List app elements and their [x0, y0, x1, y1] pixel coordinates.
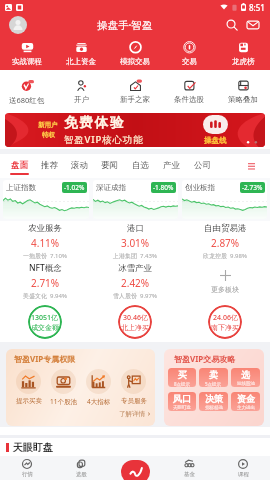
button[interactable]: 卖 [199, 368, 228, 387]
button[interactable]: 资金 [231, 392, 260, 411]
staticText: 美盛文化 [23, 292, 47, 300]
staticText: 2.71% [31, 276, 60, 290]
staticText: 7.10% [50, 252, 67, 260]
button[interactable]: 送680红包 [0, 70, 54, 113]
staticText: 4.11% [31, 236, 60, 250]
staticText: 5点提示 [205, 381, 222, 387]
button[interactable]: 上证指数 [3, 180, 89, 219]
button[interactable]: 买 [168, 368, 196, 387]
staticText: 行情 [22, 471, 33, 478]
staticText: 自选 [132, 160, 149, 171]
button[interactable]: 24.06亿 [208, 305, 242, 339]
button[interactable]: 开户 [54, 70, 108, 113]
staticText: 开户 [74, 95, 89, 104]
button[interactable]: 创业板指 [182, 180, 267, 219]
button[interactable]: 自选 [125, 154, 156, 178]
staticText: 主力进出 [237, 405, 255, 411]
staticText: 提示买卖 [16, 397, 42, 405]
staticText: 北上净买 [121, 323, 149, 332]
staticText: 要闻 [101, 160, 118, 171]
staticText: 24.06亿 [213, 313, 238, 323]
button[interactable]: 13051亿 [28, 305, 62, 339]
button[interactable]: 实战课程 [0, 36, 54, 70]
button[interactable]: 选股 [54, 456, 108, 480]
staticText: 智盈VIP核心功能 [64, 133, 144, 146]
staticText: 11个股池 [50, 397, 77, 406]
staticText: 送680红包 [9, 95, 45, 105]
button[interactable]: More tabs [243, 158, 259, 174]
staticText: 资金 [237, 393, 255, 404]
button[interactable]: 新手之家 [108, 70, 162, 113]
staticText: 2.87% [211, 236, 240, 250]
staticText: 短线股池 [237, 381, 255, 387]
button[interactable]: NFT概念 [0, 261, 90, 301]
button[interactable]: 冰雪产业 [90, 261, 180, 301]
staticText: -1.02% [64, 183, 85, 192]
button[interactable]: 交易 [162, 36, 216, 70]
button[interactable]: 专员服务 [116, 369, 151, 405]
staticText: 港口 [127, 223, 144, 234]
button[interactable]: 公司 [187, 154, 218, 178]
button[interactable]: 农业服务 [0, 221, 90, 261]
button[interactable]: 龙虎榜 [216, 36, 270, 70]
staticText: 风口 [173, 393, 191, 404]
staticText: 自由贸易港 [204, 223, 247, 234]
staticText: 农业服务 [28, 223, 62, 234]
staticText: 滚动 [71, 160, 88, 171]
staticText: 天眼盯盘 [173, 405, 191, 411]
button[interactable]: 基金 [162, 456, 216, 480]
button[interactable]: 决策 [199, 392, 228, 411]
button[interactable]: 自由贸易港 [180, 221, 270, 261]
button[interactable]: Messages [245, 17, 261, 33]
button[interactable]: 更多板块 [180, 261, 270, 301]
staticText: 9.98% [230, 252, 247, 260]
staticText: 模拟交易 [120, 57, 150, 66]
button[interactable]: Trade [121, 460, 150, 480]
button[interactable]: 30.46亿 [118, 305, 152, 339]
button[interactable]: 深证成指 [93, 180, 178, 219]
button[interactable]: 智盈VIP交易攻略 [164, 349, 264, 426]
button[interactable]: Search [224, 17, 240, 33]
staticText: 卖 [209, 369, 218, 380]
button[interactable]: 行情 [0, 456, 54, 480]
staticText: 13051亿 [31, 313, 59, 323]
staticText: NFT概念 [29, 262, 62, 274]
button[interactable]: 选 [231, 368, 260, 387]
staticText: 9.94% [50, 292, 67, 300]
staticText: 一拖股份 [23, 252, 47, 260]
button[interactable]: 策略叠加 [216, 70, 270, 113]
button[interactable]: 新用户 [5, 113, 265, 147]
staticText: 产业 [163, 160, 180, 171]
staticText: 北上资金 [66, 57, 96, 66]
staticText: 新用户 [38, 121, 58, 129]
button[interactable]: 要闻 [94, 154, 125, 178]
staticText: 交易 [182, 57, 197, 66]
button[interactable]: 课程 [216, 456, 270, 480]
button[interactable]: 北上资金 [54, 36, 108, 70]
button[interactable]: 智盈VIP专属权限 [6, 349, 155, 426]
staticText: 课程 [238, 471, 249, 478]
button[interactable]: 4大指标 [81, 369, 116, 406]
button[interactable]: 产业 [156, 154, 187, 178]
button[interactable]: 风口 [168, 392, 196, 411]
button[interactable]: 模拟交易 [108, 36, 162, 70]
staticText: 条件选股 [174, 95, 204, 104]
staticText: 上证指数 [6, 183, 36, 192]
button[interactable]: 港口 [90, 221, 180, 261]
button[interactable]: Profile [9, 16, 27, 34]
button[interactable]: 11个股池 [46, 369, 81, 406]
staticText: 新手之家 [120, 95, 150, 104]
button[interactable]: 滚动 [64, 154, 94, 178]
button[interactable]: 推荐 [34, 154, 64, 178]
button[interactable]: 条件选股 [162, 70, 216, 113]
staticText: 选股 [76, 471, 87, 478]
staticText: 3.01% [121, 236, 150, 250]
button[interactable]: 提示买卖 [11, 369, 46, 405]
staticText: 决策 [205, 393, 223, 404]
staticText: 盘面 [11, 160, 28, 171]
staticText: 基金 [184, 471, 195, 478]
staticText: 30.46亿 [123, 313, 148, 323]
button[interactable]: 盘面 [4, 154, 34, 178]
staticText: 天眼盯盘 [13, 441, 53, 454]
staticText: 指标精选 [205, 405, 223, 411]
